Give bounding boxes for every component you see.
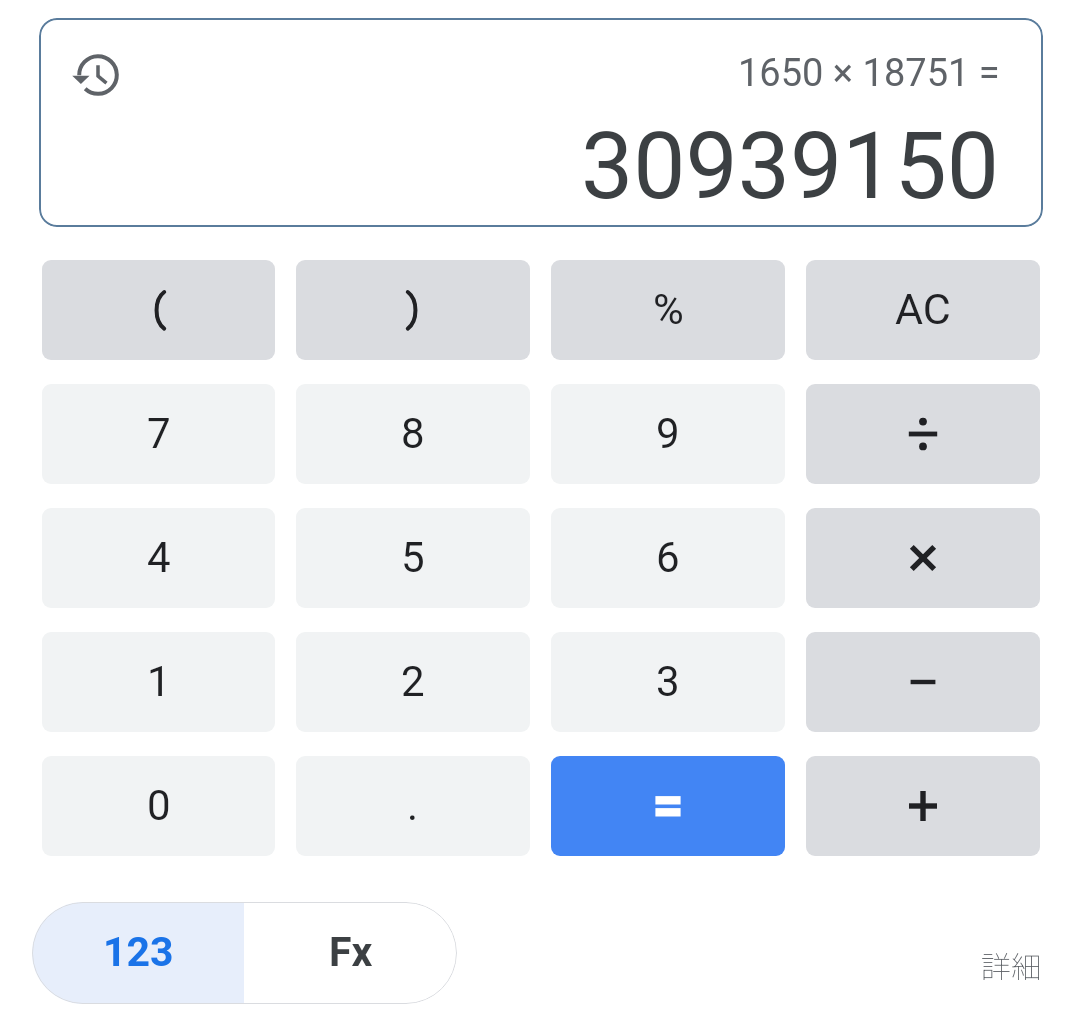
button[interactable]	[806, 756, 1040, 856]
staticText: .	[407, 781, 419, 830]
button[interactable]: 0	[42, 756, 275, 856]
button[interactable]: AC	[806, 260, 1040, 360]
button[interactable]: 4	[42, 508, 275, 608]
button[interactable]: 6	[551, 508, 785, 608]
button[interactable]	[42, 260, 275, 360]
staticText: AC	[895, 284, 951, 334]
button[interactable]: 3	[551, 632, 785, 732]
staticText: 9	[656, 409, 680, 458]
staticText: 5	[401, 533, 425, 582]
button[interactable]: 9	[551, 384, 785, 484]
button[interactable]	[296, 260, 530, 360]
staticText: %	[653, 285, 684, 334]
staticText: 2	[401, 657, 425, 706]
button[interactable]: 詳細	[971, 933, 1051, 996]
button[interactable]: %	[551, 260, 785, 360]
button[interactable]: .	[296, 756, 530, 856]
button[interactable]: 1	[42, 632, 275, 732]
button[interactable]: 2	[296, 632, 530, 732]
button[interactable]	[806, 508, 1040, 608]
button[interactable]: 8	[296, 384, 530, 484]
staticText: 8	[401, 409, 425, 458]
button[interactable]: Fx	[244, 902, 457, 1004]
button[interactable]: 5	[296, 508, 530, 608]
staticText: 30939150	[581, 112, 1000, 221]
staticText: 123	[103, 928, 174, 976]
button[interactable]: 123	[32, 902, 244, 1004]
staticText: 1650 × 18751 =	[738, 51, 1000, 96]
button[interactable]: 7	[42, 384, 275, 484]
staticText: 4	[147, 533, 171, 582]
staticText: 1	[147, 657, 171, 706]
button[interactable]	[551, 756, 785, 856]
staticText: 3	[656, 657, 680, 706]
staticText: 0	[147, 781, 171, 830]
staticText: 7	[147, 409, 171, 458]
button[interactable]	[806, 384, 1040, 484]
button[interactable]	[806, 632, 1040, 732]
staticText: 6	[656, 533, 680, 582]
staticText: Fx	[329, 928, 373, 976]
staticText: 詳細	[981, 943, 1041, 986]
button[interactable]: History	[50, 27, 146, 123]
